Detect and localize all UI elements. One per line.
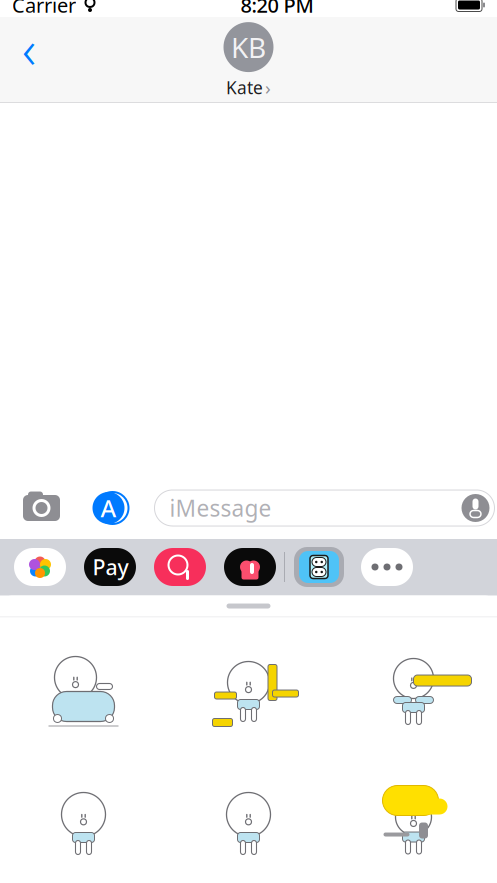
staticText: Kate — [226, 76, 263, 99]
button[interactable]: Camera — [22, 492, 60, 524]
staticText: A — [100, 492, 116, 524]
staticText: ‹ — [22, 13, 36, 83]
button[interactable]: Music — [224, 548, 276, 586]
button[interactable]: iMessage — [154, 490, 494, 526]
button[interactable]: Sticker standing two — [166, 757, 331, 883]
staticText: iMessage — [169, 493, 271, 523]
button[interactable]: Sticker standing — [1, 757, 166, 883]
button[interactable]: Apps — [88, 491, 128, 525]
staticText: KB — [231, 28, 266, 66]
staticText: 8:20 PM — [240, 0, 313, 18]
button[interactable]: Photos — [14, 548, 66, 586]
button[interactable]: Sticker eating fries — [166, 625, 331, 757]
staticText: Pay — [92, 553, 128, 581]
button[interactable]: Sticker blonde hair — [331, 757, 496, 883]
button[interactable]: Images — [154, 548, 206, 586]
button[interactable]: Back — [6, 25, 52, 71]
staticText: Carrier — [12, 0, 76, 18]
button[interactable]: More apps — [361, 548, 413, 586]
button[interactable]: Apple Pay — [84, 548, 136, 586]
button[interactable]: Sticker pack — [293, 546, 345, 588]
button[interactable]: Sticker bath time — [1, 625, 166, 757]
button[interactable]: Sticker corn — [331, 625, 496, 757]
staticText: › — [265, 75, 271, 100]
